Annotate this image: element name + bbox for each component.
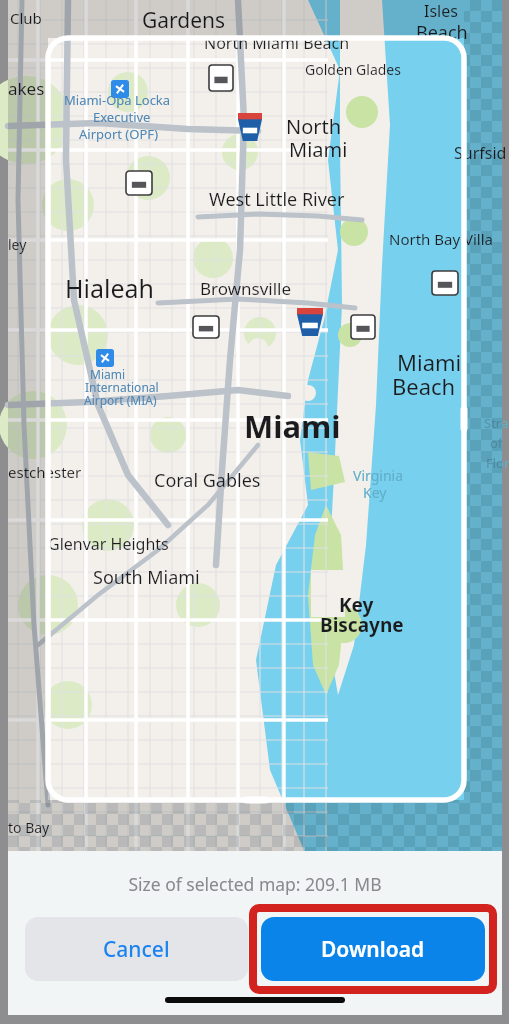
button[interactable]: Download xyxy=(261,917,485,981)
staticText: Beach xyxy=(392,371,456,401)
staticText: Glenvar Heights xyxy=(48,533,169,555)
staticText: North Bay Villa xyxy=(389,229,493,249)
staticText: Airport (OPF) xyxy=(79,125,159,143)
staticText: Key xyxy=(363,483,387,502)
staticText: Miami-Opa Locka xyxy=(64,91,171,109)
staticText: Golden Glades xyxy=(305,60,401,79)
staticText: Brownsville xyxy=(200,277,292,300)
staticText: Executive xyxy=(93,108,151,126)
staticText: Size of selected map: 209.1 MB xyxy=(8,872,502,896)
staticText: Gardens xyxy=(142,6,226,35)
staticText: akes xyxy=(8,77,45,100)
staticText: estchester xyxy=(8,462,82,482)
staticText: West Little River xyxy=(209,187,345,212)
staticText: Club xyxy=(10,8,42,28)
staticText: International xyxy=(85,379,159,395)
staticText: Key xyxy=(339,592,374,618)
staticText: Virginia xyxy=(353,466,403,485)
staticText: Biscayne xyxy=(320,612,404,638)
staticText: Stra xyxy=(484,414,509,432)
staticText: Hialeah xyxy=(65,271,155,305)
staticText: Isles xyxy=(424,0,458,22)
staticText: ley xyxy=(8,235,27,254)
staticText: Miami xyxy=(289,136,348,163)
staticText: Beach xyxy=(416,20,468,45)
staticText: of xyxy=(490,434,503,452)
staticText: Airport (MIA) xyxy=(84,392,157,408)
staticText: North xyxy=(286,113,342,140)
staticText: Surfsid xyxy=(454,142,507,164)
staticText: North Miami Beach xyxy=(204,32,350,54)
staticText: Miami xyxy=(397,347,462,377)
staticText: Flori xyxy=(486,454,509,472)
staticText: Download xyxy=(321,935,425,964)
staticText: Cancel xyxy=(103,935,170,964)
staticText: South Miami xyxy=(93,565,200,590)
staticText: to Bay xyxy=(8,818,50,837)
button[interactable]: Cancel xyxy=(25,917,248,981)
staticText: Coral Gables xyxy=(154,468,261,493)
staticText: Miami xyxy=(90,366,126,382)
staticText: Miami xyxy=(244,405,341,447)
